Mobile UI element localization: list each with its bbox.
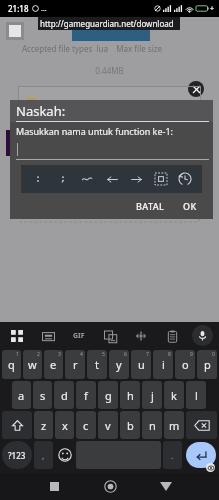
button[interactable]: n — [142, 411, 162, 439]
button[interactable]: s — [33, 381, 52, 409]
staticText: a — [18, 388, 25, 403]
button[interactable]: http://gameguardian.net/download — [38, 17, 180, 30]
button[interactable]: x — [55, 411, 74, 439]
button[interactable]: k — [164, 381, 184, 409]
button[interactable] — [16, 142, 209, 160]
button[interactable]: b — [120, 411, 140, 439]
staticText: k — [171, 388, 177, 403]
staticText: s — [40, 388, 46, 403]
staticText: r — [73, 357, 78, 372]
staticText: c — [83, 418, 89, 433]
button[interactable]: Stickers — [37, 325, 59, 347]
button[interactable]: Comma — [34, 441, 53, 469]
button[interactable]: Enter — [186, 442, 216, 468]
button[interactable]: w — [23, 350, 42, 379]
button[interactable]: h — [120, 381, 140, 409]
staticText: , — [42, 449, 45, 461]
staticText: 0.44MB — [0, 65, 219, 76]
button[interactable]: Switch keyboard — [6, 325, 28, 347]
button[interactable]: Hide keyboard — [138, 473, 194, 500]
button[interactable]: q — [2, 350, 21, 379]
button[interactable]: Clipboard — [161, 325, 183, 347]
staticText: l — [195, 388, 198, 403]
staticText: q — [8, 357, 15, 372]
button[interactable]: Select all — [150, 168, 172, 190]
staticText: 6 — [124, 351, 127, 358]
button[interactable]: OK — [177, 197, 203, 215]
button[interactable]: g — [98, 381, 118, 409]
button[interactable]: z — [34, 411, 53, 439]
button[interactable]: Recents — [26, 473, 82, 500]
staticText: Builder Script Game Guardia... — [43, 97, 171, 109]
button[interactable]: e — [44, 350, 63, 379]
button[interactable]: u — [131, 350, 151, 379]
staticText: z — [41, 418, 47, 433]
button[interactable]: p — [197, 350, 217, 379]
button[interactable]: a — [12, 381, 31, 409]
staticText: u — [138, 357, 145, 372]
button[interactable]: m — [164, 411, 184, 439]
button[interactable]: Move right — [125, 168, 147, 190]
staticText: d — [61, 388, 68, 403]
button[interactable]: c — [76, 411, 96, 439]
staticText: e — [50, 357, 57, 372]
staticText: GIF — [73, 331, 85, 341]
button[interactable]: r — [65, 350, 85, 379]
staticText: y — [116, 357, 122, 372]
staticText: 5 — [102, 351, 105, 358]
button[interactable]: Shift — [2, 411, 32, 439]
staticText: http://gameguardian.net/download — [40, 18, 174, 29]
button[interactable]: ?123 — [2, 441, 32, 469]
staticText: 9 — [190, 351, 193, 358]
button[interactable]: i — [153, 350, 173, 379]
button[interactable]: Voice input — [192, 325, 213, 346]
staticText: . — [171, 449, 174, 461]
button[interactable]: f — [76, 381, 96, 409]
button[interactable]: History — [174, 168, 196, 190]
button[interactable]: Home — [82, 473, 138, 500]
staticText: w — [28, 357, 37, 372]
staticText: h — [127, 388, 134, 403]
button[interactable]: Text editing — [130, 325, 152, 347]
staticText: Choose Files... — [80, 182, 140, 194]
button[interactable]: ; — [52, 168, 74, 190]
button[interactable]: Add screenshots — [6, 130, 209, 156]
staticText: 0 — [212, 351, 215, 358]
staticText: 7 — [146, 351, 149, 358]
staticText: x — [62, 418, 68, 433]
staticText: + — [210, 4, 215, 14]
button[interactable]: : — [27, 168, 49, 190]
staticText: p — [204, 357, 211, 372]
button[interactable]: tilde — [76, 168, 98, 190]
button[interactable]: o — [175, 350, 195, 379]
button[interactable]: t — [87, 350, 107, 379]
button[interactable]: Remove attachment — [188, 81, 204, 97]
button[interactable]: y — [109, 350, 129, 379]
staticText: Accepted file types: gif, jpeg, jpe, jpg… — [40, 203, 179, 213]
button[interactable]: BATAL — [130, 197, 171, 215]
button[interactable]: Choose Files... — [30, 177, 189, 198]
staticText: i — [162, 357, 165, 372]
button[interactable]: v — [98, 411, 118, 439]
staticText: ... — [41, 4, 47, 14]
button[interactable]: j — [142, 381, 162, 409]
button[interactable]: Translate — [99, 325, 121, 347]
staticText: b — [127, 418, 134, 433]
button[interactable]: Period — [163, 441, 182, 469]
button[interactable]: l — [186, 381, 206, 409]
button[interactable]: d — [54, 381, 74, 409]
button[interactable]: Backspace — [186, 411, 217, 439]
staticText: m — [169, 418, 180, 433]
staticText: 1 — [16, 351, 19, 358]
button[interactable]: Move left — [101, 168, 123, 190]
button[interactable]: GIF — [68, 325, 90, 347]
staticText: Accepted file types lua Max file size — [22, 43, 219, 54]
staticText: g — [105, 388, 112, 403]
button[interactable] — [55, 441, 74, 469]
staticText: BATAL — [136, 200, 165, 212]
staticText: 4 — [80, 351, 83, 358]
button[interactable] — [72, 28, 150, 41]
